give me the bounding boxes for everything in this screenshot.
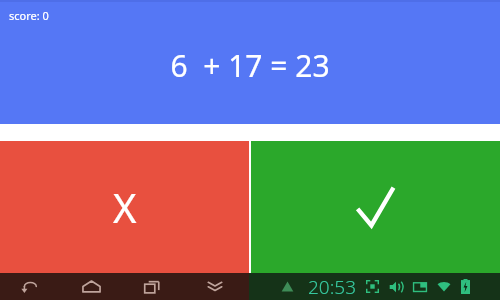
other: Screenshot — [366, 280, 379, 293]
staticText: X — [113, 180, 137, 234]
staticText: 6 + 17 = 23 — [170, 45, 330, 86]
button[interactable]: Recent apps — [138, 273, 168, 300]
other: Wi-Fi — [437, 280, 451, 294]
other: Battery — [461, 279, 470, 294]
button[interactable]: Back — [14, 273, 44, 300]
other: Storage — [413, 280, 427, 294]
other: Warning — [281, 280, 294, 293]
button[interactable]: Wrong — [0, 141, 249, 273]
staticText: 20:53 — [308, 274, 357, 300]
button[interactable]: Hide — [200, 273, 230, 300]
other: Volume — [389, 280, 403, 294]
button[interactable]: Home — [76, 273, 106, 300]
button[interactable]: score: 0 — [0, 0, 500, 124]
button[interactable]: Correct — [251, 141, 500, 273]
staticText: score: 0 — [9, 8, 49, 23]
